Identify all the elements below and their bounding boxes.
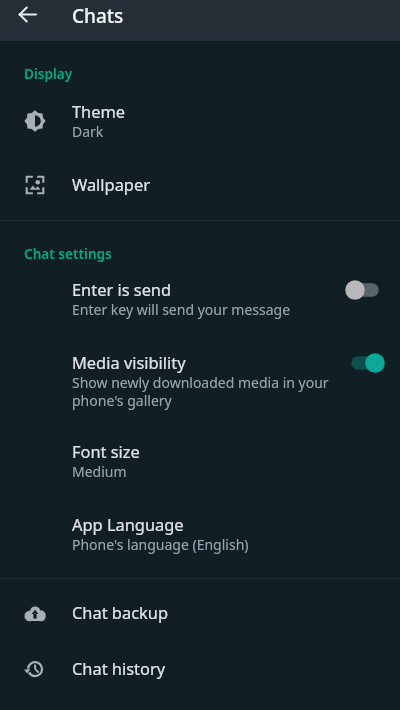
staticText: Display <box>24 64 73 83</box>
staticText: Chat settings <box>24 244 112 263</box>
staticText: Chat backup <box>72 601 168 623</box>
button[interactable]: Back <box>9 0 46 33</box>
button[interactable]: App Language <box>0 502 400 564</box>
staticText: Enter key will send your message <box>72 300 291 319</box>
button[interactable]: Wallpaper <box>0 160 400 208</box>
button[interactable]: On <box>342 349 388 377</box>
button[interactable]: Chat history <box>0 644 400 692</box>
staticText: Font size <box>72 440 140 462</box>
staticText: Chat history <box>72 657 166 679</box>
staticText: Theme <box>72 100 126 122</box>
other: Theme <box>23 109 47 133</box>
staticText: Chats <box>72 3 124 29</box>
button[interactable]: Media visibility <box>0 341 400 419</box>
staticText: Show newly downloaded media in your phon… <box>72 373 334 410</box>
staticText: Phone's language (English) <box>72 535 249 554</box>
button[interactable]: Chat backup <box>0 588 400 636</box>
button[interactable]: Off <box>342 276 388 304</box>
staticText: Enter is send <box>72 278 172 300</box>
staticText: Wallpaper <box>72 173 150 195</box>
staticText: Media visibility <box>72 351 186 373</box>
other: Chat history <box>23 657 47 681</box>
other: Chat backup <box>23 601 47 625</box>
staticText: Medium <box>72 462 127 481</box>
button[interactable]: Enter is send <box>0 267 400 329</box>
button[interactable]: Theme <box>0 89 400 151</box>
button[interactable]: Font size <box>0 429 400 491</box>
staticText: Dark <box>72 122 104 141</box>
staticText: App Language <box>72 513 184 535</box>
other: Wallpaper <box>23 173 47 197</box>
